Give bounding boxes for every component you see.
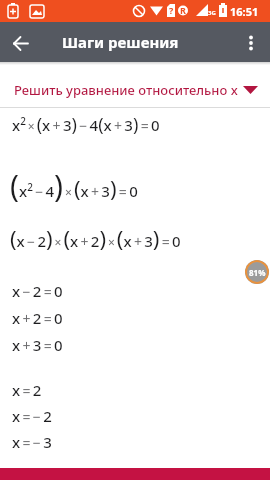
- staticText: 16:51: [230, 4, 259, 19]
- staticText: 81%: [249, 267, 266, 278]
- staticText: ?: [169, 4, 174, 16]
- button[interactable]: Решить уравнение относительно x: [0, 62, 270, 107]
- staticText: (x − 2) × (x + 2) × (x + 3) = 0: [10, 223, 181, 253]
- staticText: 3G: [208, 9, 216, 17]
- staticText: x + 2 = 0: [12, 308, 63, 328]
- button[interactable]: [230, 22, 270, 62]
- staticText: x = 2: [12, 380, 42, 400]
- staticText: (x2 − 4) × (x + 3) = 0: [10, 165, 138, 205]
- button[interactable]: 81%: [245, 260, 269, 284]
- staticText: x = − 2: [12, 406, 52, 426]
- staticText: Решить уравнение относительно x: [14, 81, 238, 99]
- staticText: x2 × (x + 3) − 4(x + 3) = 0: [12, 112, 160, 137]
- staticText: x + 3 = 0: [12, 335, 63, 355]
- staticText: Шаги решения: [62, 32, 179, 52]
- staticText: x = − 3: [12, 432, 52, 452]
- staticText: x − 2 = 0: [12, 281, 63, 301]
- button[interactable]: [0, 22, 42, 62]
- staticText: R: [180, 4, 186, 16]
